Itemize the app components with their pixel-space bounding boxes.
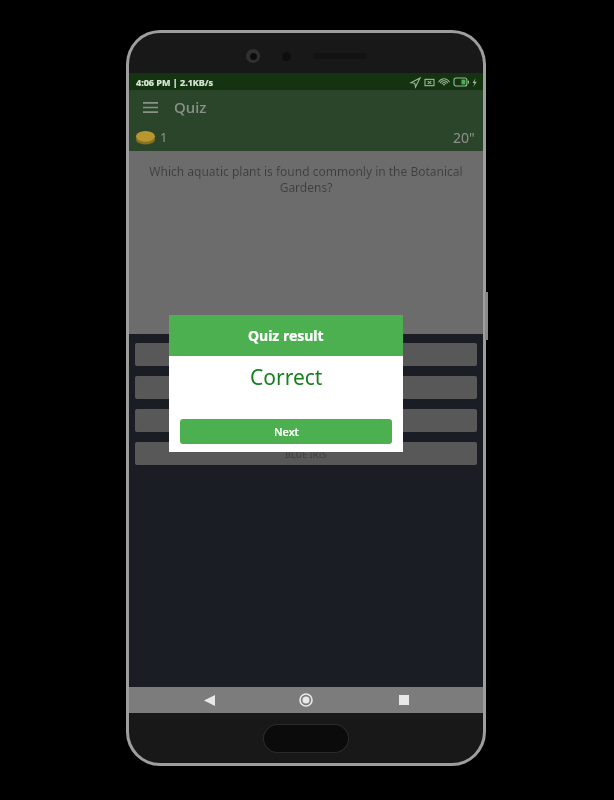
staticText: Quiz [174, 97, 207, 117]
button[interactable]: Home [288, 687, 324, 713]
staticText: Correct [250, 363, 323, 392]
staticText: 1 [160, 128, 168, 146]
staticText: Quiz result [248, 326, 324, 345]
button[interactable]: Back [191, 687, 227, 713]
staticText: BLUE IRIS [285, 448, 327, 460]
button[interactable]: WATER HYACINTH [135, 343, 477, 366]
button[interactable]: BLUE IRIS [135, 442, 477, 465]
button[interactable]: Recent apps [386, 687, 422, 713]
button[interactable]: GIANT WATER LILIES [135, 409, 477, 432]
button[interactable]: Open navigation menu [135, 92, 165, 122]
staticText: Which aquatic plant is found commonly in… [149, 163, 463, 195]
staticText: Next [274, 424, 299, 439]
button[interactable]: WATER LETTUCE [135, 376, 477, 399]
staticText: WATER LETTUCE [272, 382, 341, 394]
staticText: 4:06 PM | 2.1KB/s [136, 76, 214, 88]
staticText: WATER HYACINTH [268, 349, 345, 361]
staticText: 20" [453, 128, 475, 147]
button[interactable]: Next [180, 419, 392, 444]
staticText: GIANT WATER LILIES [262, 415, 350, 427]
